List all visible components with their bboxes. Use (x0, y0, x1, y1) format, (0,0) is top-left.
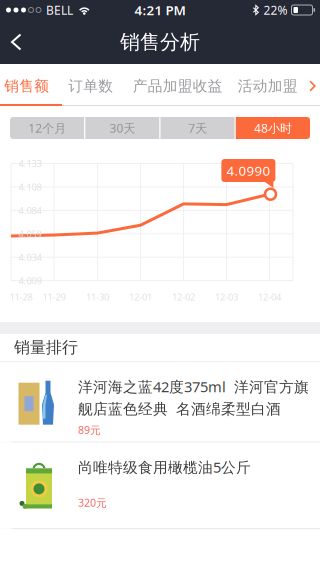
staticText: 销量排行 (14, 338, 78, 357)
button[interactable]: 订单数 (58, 66, 124, 106)
button[interactable]: 洋河海之蓝42度375ml 洋河官方旗舰店蓝色经典 名酒绵柔型白酒 (0, 362, 320, 442)
staticText: 320元 (78, 496, 107, 510)
staticText: 30天 (109, 120, 135, 136)
staticText: 12-04 (258, 291, 281, 303)
button[interactable]: 48小时 (236, 117, 310, 139)
staticText: 12-03 (215, 291, 238, 303)
button[interactable]: More categories (304, 66, 320, 106)
staticText: 7天 (188, 120, 207, 136)
button[interactable]: 30天 (85, 117, 159, 139)
staticText: 销售额 (4, 77, 49, 95)
button[interactable]: Back (0, 20, 39, 63)
staticText: 22% (263, 2, 287, 18)
staticText: 11-28 (9, 291, 32, 303)
staticText: 12-02 (172, 291, 195, 303)
staticText: 4.009 (18, 274, 41, 287)
staticText: 4.133 (18, 157, 41, 170)
button[interactable]: 活动加盟 (232, 66, 304, 106)
staticText: 洋河海之蓝42度375ml 洋河官方旗舰店蓝色经典 名酒绵柔型白酒 (78, 377, 309, 418)
button[interactable]: 7天 (160, 117, 235, 139)
staticText: 销售分析 (120, 30, 200, 54)
staticText: 4.084 (18, 204, 41, 216)
staticText: 4:21 PM (134, 1, 185, 19)
staticText: BELL (46, 2, 73, 18)
button[interactable]: 销售额 (0, 66, 58, 106)
staticText: 4.0990 (226, 162, 270, 179)
button[interactable]: 产品加盟收益 (124, 66, 232, 106)
staticText: 12-01 (129, 291, 152, 303)
button[interactable]: 12个月 (10, 117, 84, 139)
staticText: 活动加盟 (238, 77, 298, 95)
staticText: 尚唯特级食用橄榄油5公斤 (78, 457, 251, 477)
button[interactable]: 尚唯特级食用橄榄油5公斤 (0, 442, 320, 528)
staticText: 4.108 (18, 181, 41, 193)
staticText: 12个月 (28, 120, 66, 136)
staticText: 11-30 (86, 291, 109, 303)
staticText: 4.059 (18, 228, 41, 240)
staticText: 订单数 (68, 77, 113, 95)
staticText: 4.034 (18, 251, 41, 263)
staticText: 89元 (78, 423, 101, 437)
staticText: 11-29 (42, 291, 65, 303)
staticText: 产品加盟收益 (133, 77, 223, 95)
staticText: 48小时 (254, 120, 292, 136)
